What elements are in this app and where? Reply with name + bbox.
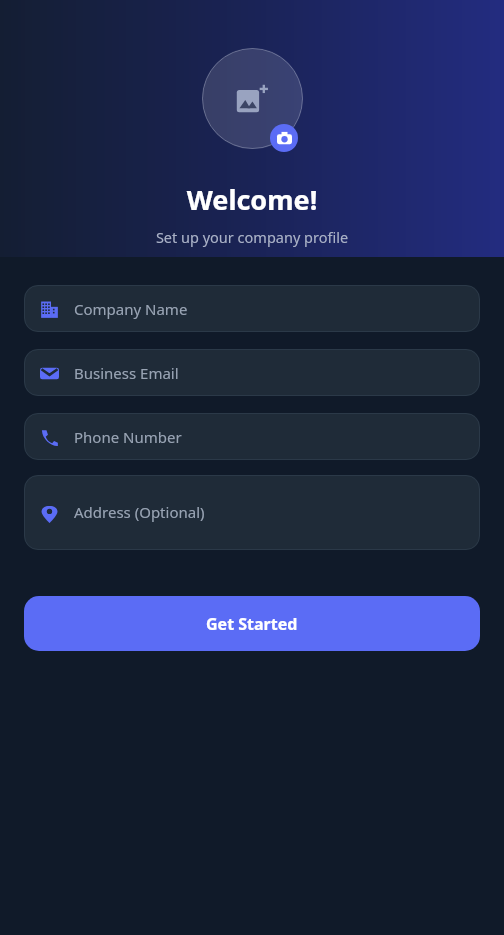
staticText: Welcome! <box>0 181 504 218</box>
staticText: Address (Optional) <box>74 502 205 522</box>
button[interactable]: Get Started <box>24 596 480 651</box>
button[interactable]: Add company logo <box>202 48 303 149</box>
button[interactable]: Change photo <box>270 124 298 152</box>
staticText: Phone Number <box>74 427 182 447</box>
button[interactable]: Phone Number <box>24 413 480 460</box>
button[interactable]: Business Email <box>24 349 480 396</box>
staticText: Set up your company profile <box>0 227 504 247</box>
button[interactable]: Company Name <box>24 285 480 332</box>
button[interactable]: Address (Optional) <box>24 475 480 550</box>
staticText: Business Email <box>74 363 179 383</box>
staticText: Get Started <box>206 613 298 635</box>
staticText: Company Name <box>74 299 188 319</box>
